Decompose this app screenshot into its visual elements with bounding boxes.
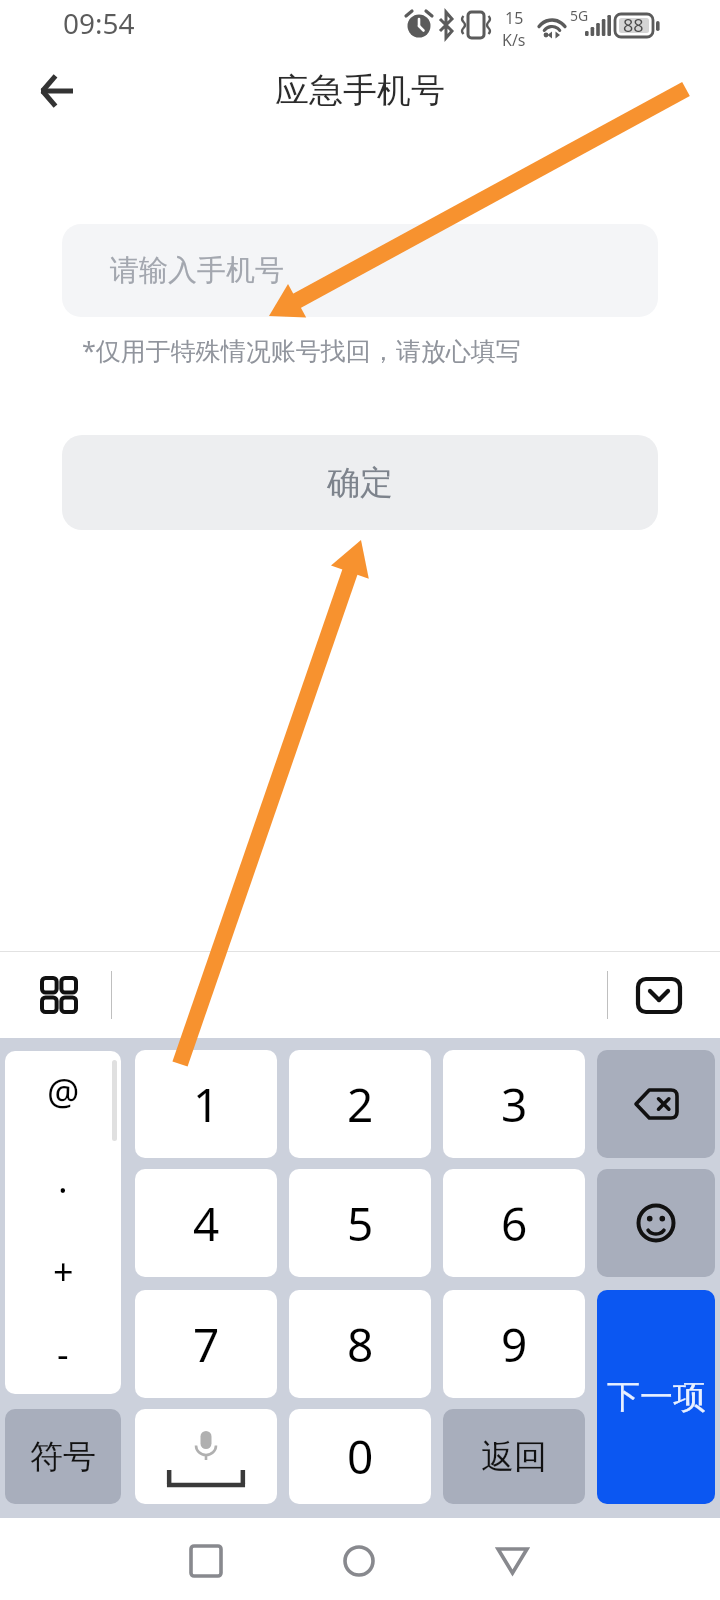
button[interactable]: 2 (289, 1050, 431, 1158)
button[interactable]: 返回 (443, 1409, 585, 1504)
staticText: 1 (193, 1073, 220, 1136)
button[interactable]: 8 (289, 1290, 431, 1398)
button[interactable]: Recents (176, 1531, 236, 1591)
button[interactable]: Emoji (597, 1169, 715, 1277)
staticText: 下一项 (607, 1376, 706, 1418)
button[interactable]: Backspace (597, 1050, 715, 1158)
button[interactable]: 确定 (62, 435, 658, 530)
button[interactable]: 1 (135, 1050, 277, 1158)
staticText: 6 (501, 1192, 528, 1255)
staticText: *仅用于特殊情况账号找回，请放心填写 (82, 333, 521, 367)
staticText: + (53, 1247, 74, 1296)
staticText: 0 (347, 1425, 374, 1488)
staticText: 3 (501, 1073, 528, 1136)
staticText: - (57, 1329, 69, 1378)
staticText: 5 (347, 1192, 374, 1255)
button[interactable]: 4 (135, 1169, 277, 1277)
button[interactable]: Back (482, 1531, 542, 1591)
staticText: 2 (347, 1073, 374, 1136)
button[interactable]: 7 (135, 1290, 277, 1398)
staticText: 88 (623, 13, 644, 38)
staticText: 符号 (30, 1436, 96, 1478)
staticText: 5G (570, 6, 589, 25)
button[interactable]: Symbols column (5, 1051, 121, 1394)
button[interactable]: Hide keyboard (638, 979, 680, 1012)
button[interactable]: 下一项 (597, 1290, 715, 1504)
staticText: 确定 (327, 462, 393, 504)
staticText: K/s (502, 29, 526, 51)
staticText: 8 (347, 1313, 374, 1376)
button[interactable]: 9 (443, 1290, 585, 1398)
staticText: 9 (501, 1313, 528, 1376)
button[interactable]: 请输入手机号 (62, 224, 658, 317)
staticText: 09:54 (63, 4, 135, 42)
button[interactable]: 符号 (5, 1409, 121, 1504)
button[interactable]: Back (26, 61, 86, 121)
staticText: 4 (193, 1192, 220, 1255)
staticText: 应急手机号 (275, 69, 445, 112)
staticText: 7 (193, 1313, 220, 1376)
staticText: 返回 (481, 1436, 547, 1478)
staticText: . (58, 1155, 68, 1204)
button[interactable]: Home (329, 1531, 389, 1591)
staticText: 请输入手机号 (110, 252, 284, 289)
button[interactable]: 3 (443, 1050, 585, 1158)
button[interactable]: 0 (289, 1409, 431, 1504)
staticText: @ (47, 1067, 80, 1116)
staticText: 15 (505, 7, 524, 29)
button[interactable]: 6 (443, 1169, 585, 1277)
button[interactable]: 5 (289, 1169, 431, 1277)
button[interactable]: Keyboard layout (34, 970, 84, 1020)
button[interactable]: Space / voice input (135, 1409, 277, 1504)
